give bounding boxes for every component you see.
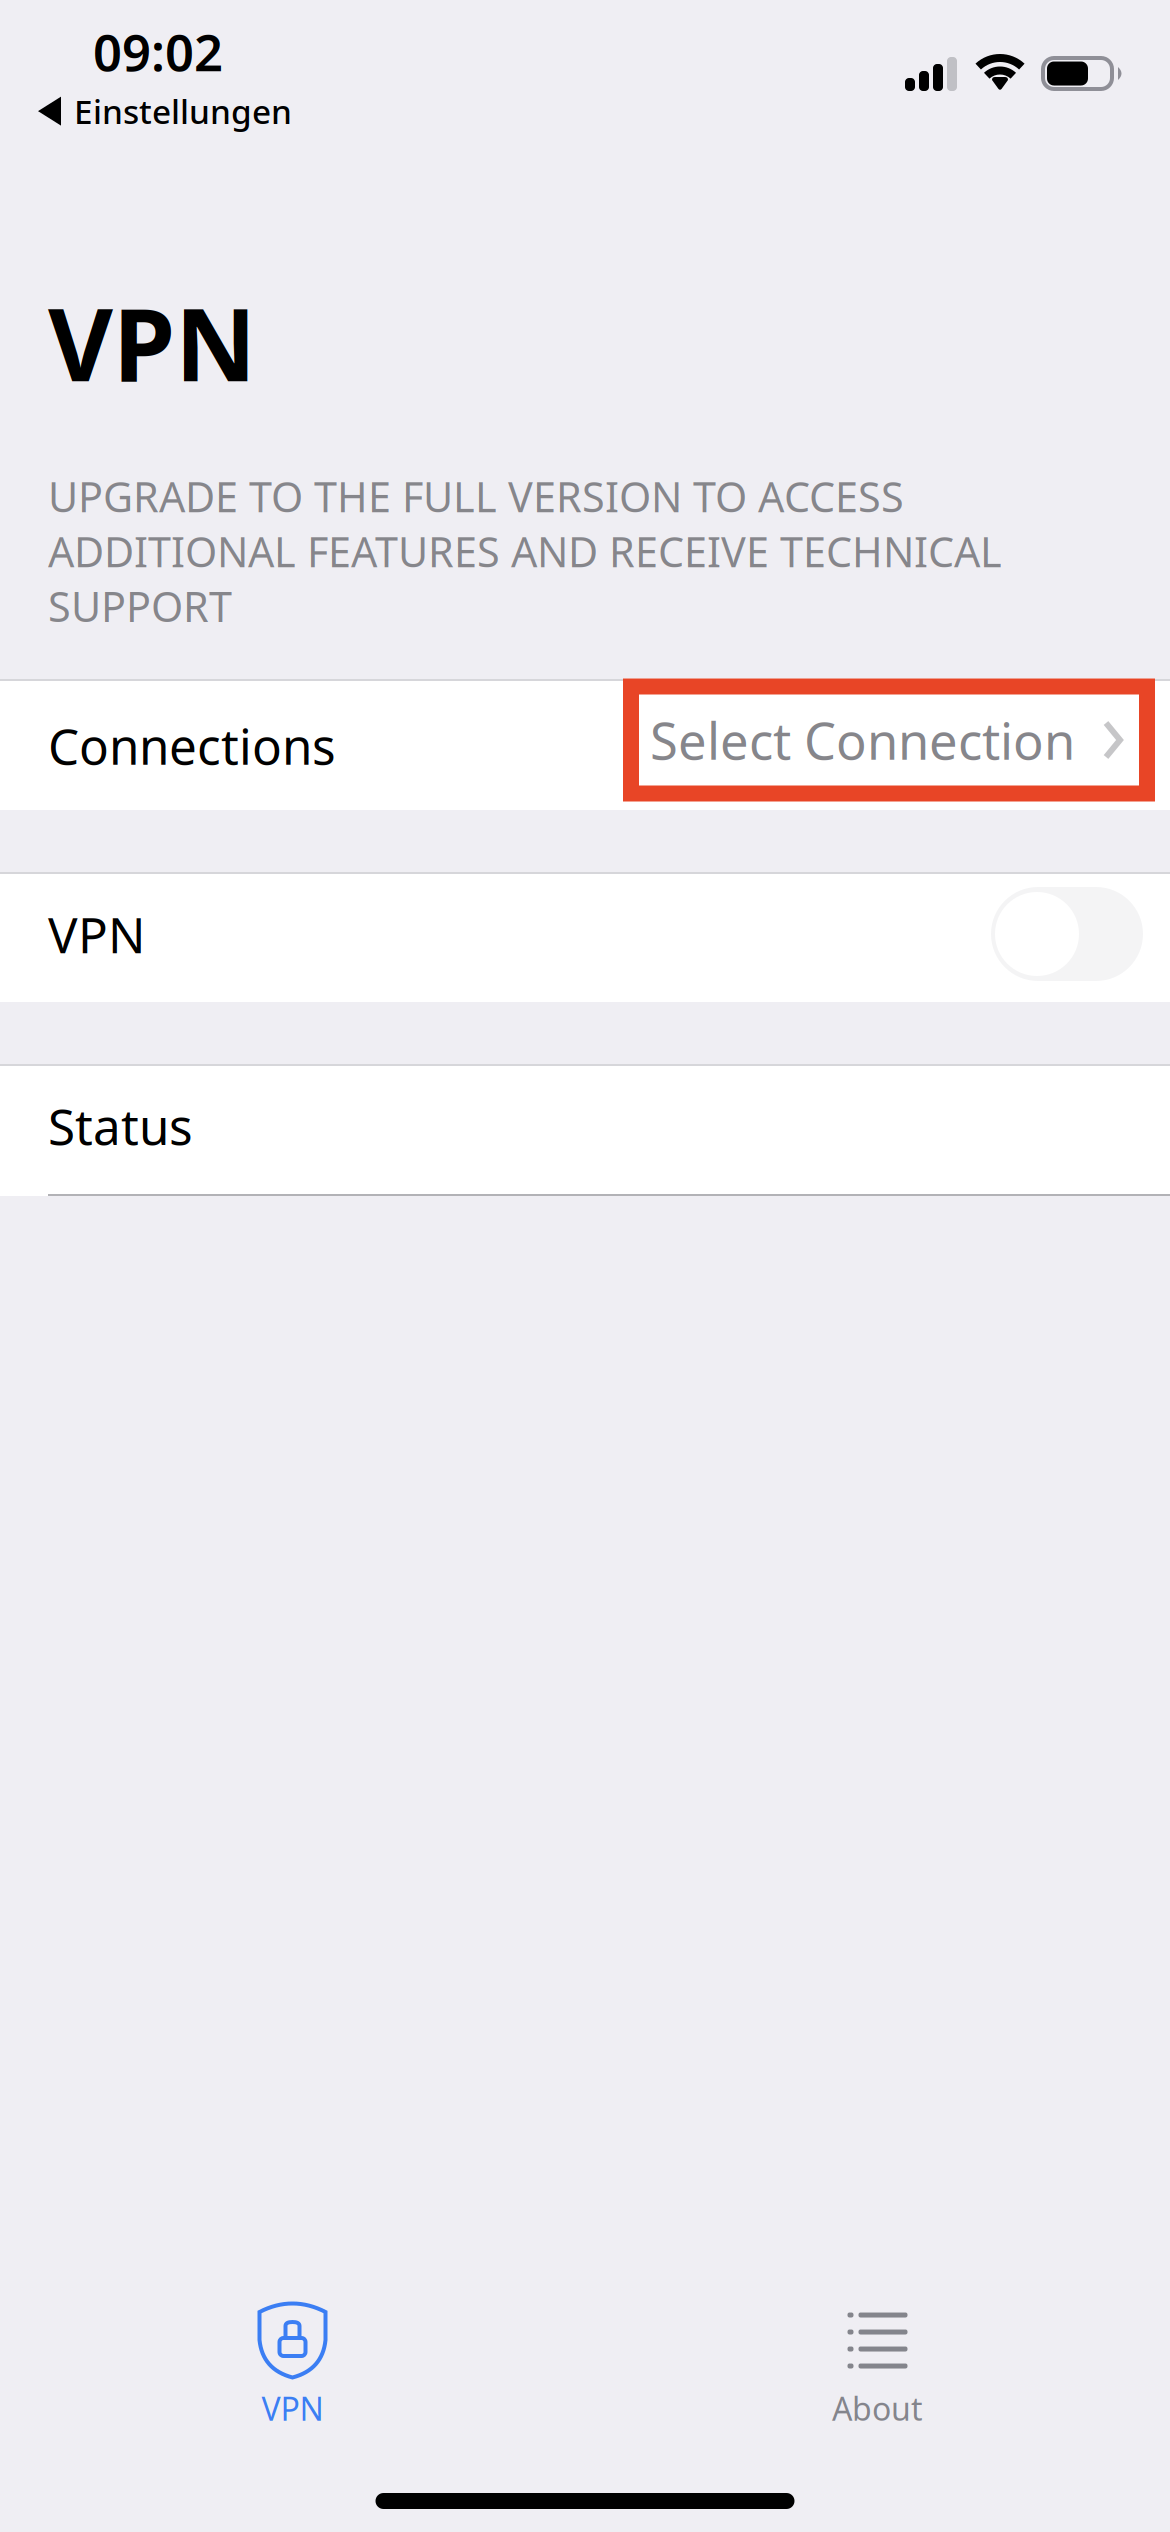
staticText: Status — [48, 1093, 193, 1158]
staticText: 09:02 — [93, 18, 223, 85]
button[interactable] — [991, 887, 1143, 981]
staticText: VPN — [48, 901, 145, 967]
button[interactable]: About — [585, 2291, 1170, 2432]
staticText: Connections — [48, 713, 336, 778]
staticText: Einstellungen — [74, 89, 292, 133]
button[interactable]: VPN — [0, 2291, 585, 2432]
staticText: UPGRADE TO THE FULL VERSION TO ACCESS AD… — [48, 469, 1002, 633]
staticText: VPN — [261, 2387, 323, 2429]
staticText: Select Connection — [650, 706, 1075, 774]
button[interactable]: Select Connection — [623, 678, 1155, 801]
staticText: About — [832, 2387, 923, 2429]
staticText: VPN — [48, 276, 256, 409]
button[interactable]: Einstellungen — [0, 89, 292, 133]
